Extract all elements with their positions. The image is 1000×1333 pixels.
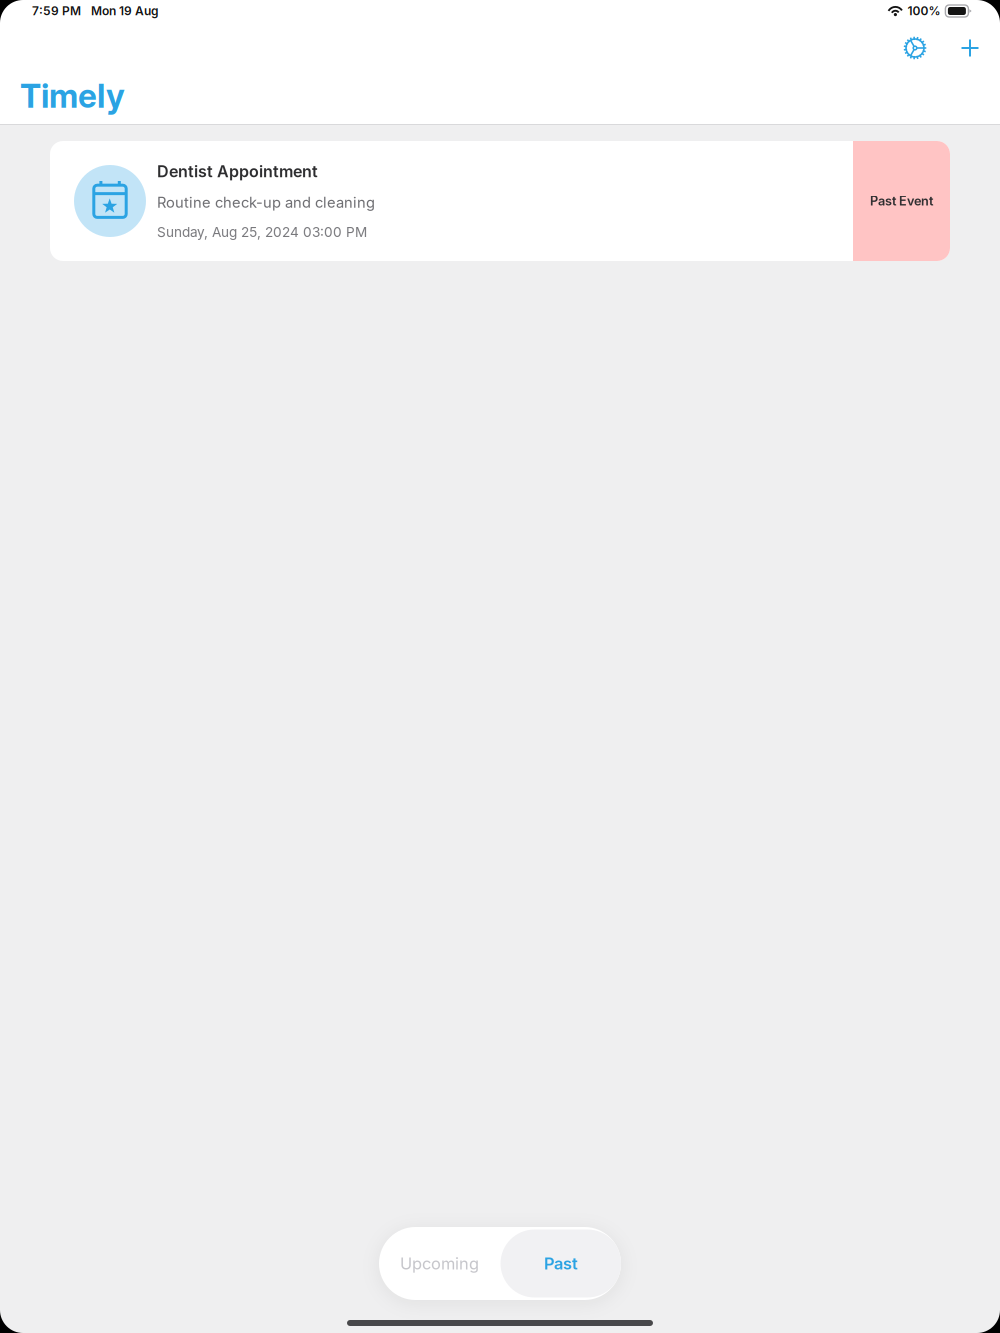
button[interactable]: Settings [893,31,940,65]
staticText: Routine check-up and cleaning [157,194,375,211]
button[interactable]: Past [500,1227,621,1300]
staticText: Past Event [870,193,933,209]
staticText: Sunday, Aug 25, 2024 03:00 PM [157,224,367,240]
staticText: Upcoming [400,1254,479,1273]
button[interactable]: Add Event [947,31,993,65]
staticText: Dentist Appointment [157,162,318,181]
staticText: 7:59 PM [32,4,81,18]
staticText: Mon 19 Aug [91,4,159,18]
button[interactable]: Dentist Appointment [50,141,950,261]
staticText: Past [544,1254,578,1273]
button[interactable]: Upcoming [378,1227,500,1300]
staticText: Timely [20,76,125,115]
staticText: 100% [907,4,940,18]
